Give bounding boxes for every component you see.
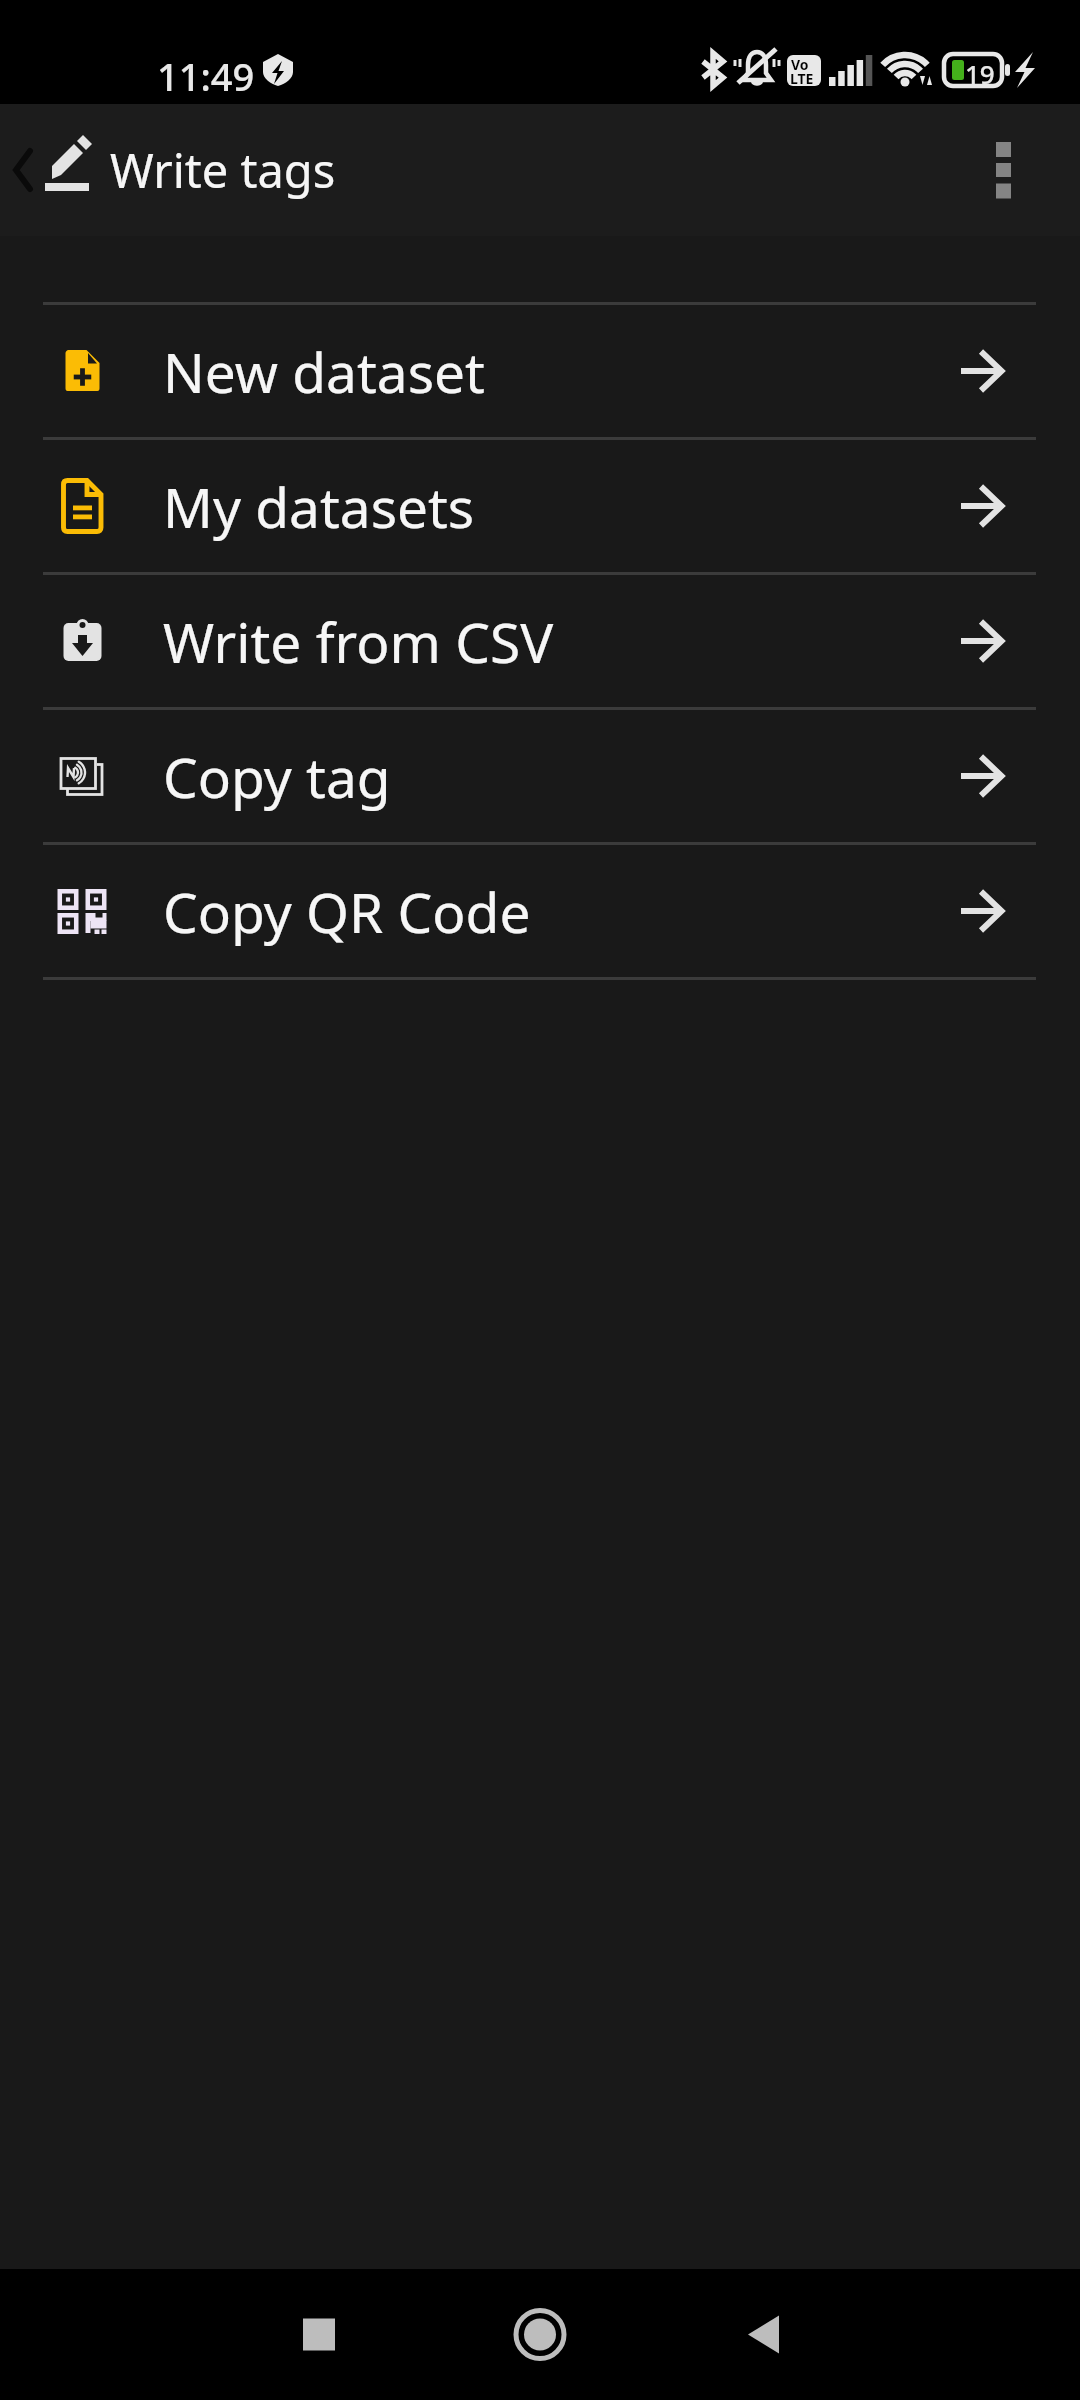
button[interactable]: Home: [430, 2269, 650, 2400]
button[interactable]: Recent apps: [209, 2269, 429, 2400]
staticText: Copy QR Code: [163, 874, 531, 949]
staticText: 19: [965, 56, 995, 91]
staticText: LTE: [790, 69, 814, 88]
staticText: Vo: [791, 55, 809, 74]
button[interactable]: Write from CSV: [0, 575, 1080, 707]
button[interactable]: Back: [653, 2269, 873, 2400]
staticText: My datasets: [163, 469, 475, 544]
staticText: Write from CSV: [163, 604, 554, 679]
staticText: New dataset: [163, 334, 485, 409]
staticText: Copy tag: [163, 739, 391, 814]
button[interactable]: Copy QR Code: [0, 845, 1080, 977]
button[interactable]: Copy tag: [0, 710, 1080, 842]
button[interactable]: More options: [970, 104, 1080, 236]
button[interactable]: My datasets: [0, 440, 1080, 572]
button[interactable]: Navigate up: [0, 104, 110, 236]
staticText: Write tags: [110, 138, 336, 202]
staticText: 11:49: [157, 50, 255, 102]
button[interactable]: New dataset: [0, 305, 1080, 437]
